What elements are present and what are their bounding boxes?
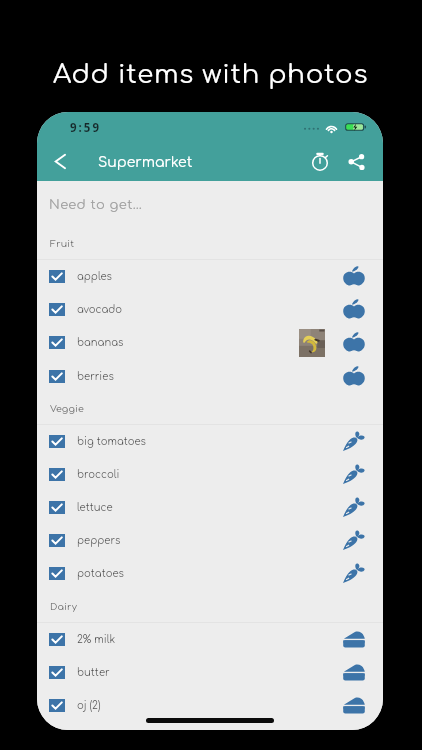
button[interactable]: bananas (37, 326, 383, 359)
staticText: broccoli (77, 469, 120, 480)
staticText: oj (2) (77, 700, 101, 711)
button[interactable]: Timer (306, 147, 334, 175)
button[interactable]: Back (46, 147, 74, 175)
staticText: avocado (77, 304, 123, 315)
button[interactable]: butter (37, 656, 383, 689)
staticText: Fruit (50, 239, 75, 250)
staticText: peppers (77, 535, 121, 546)
staticText: lettuce (77, 502, 113, 513)
staticText: 9:59 (70, 120, 101, 136)
staticText: Veggie (50, 404, 85, 415)
staticText: big tomatoes (77, 436, 147, 447)
button[interactable]: potatoes (37, 557, 383, 590)
staticText: Need to get… (49, 198, 143, 212)
button[interactable]: 2% milk (37, 623, 383, 656)
staticText: Dairy (50, 602, 78, 613)
button[interactable]: apples (37, 260, 383, 293)
staticText: Supermarket (98, 155, 193, 171)
button[interactable]: lettuce (37, 491, 383, 524)
staticText: 2% milk (77, 634, 116, 645)
staticText: berries (77, 371, 114, 382)
button[interactable]: oj (2) (37, 689, 383, 722)
staticText: butter (77, 667, 110, 678)
staticText: apples (77, 271, 112, 282)
button[interactable]: big tomatoes (37, 425, 383, 458)
staticText: potatoes (77, 568, 124, 579)
button[interactable]: peppers (37, 524, 383, 557)
button[interactable]: broccoli (37, 458, 383, 491)
staticText: Add items with photos (53, 60, 369, 89)
button[interactable]: avocado (37, 293, 383, 326)
button[interactable]: Share (341, 147, 371, 177)
button[interactable]: Need to get… (37, 181, 383, 228)
staticText: bananas (77, 337, 124, 348)
button[interactable]: berries (37, 360, 383, 393)
